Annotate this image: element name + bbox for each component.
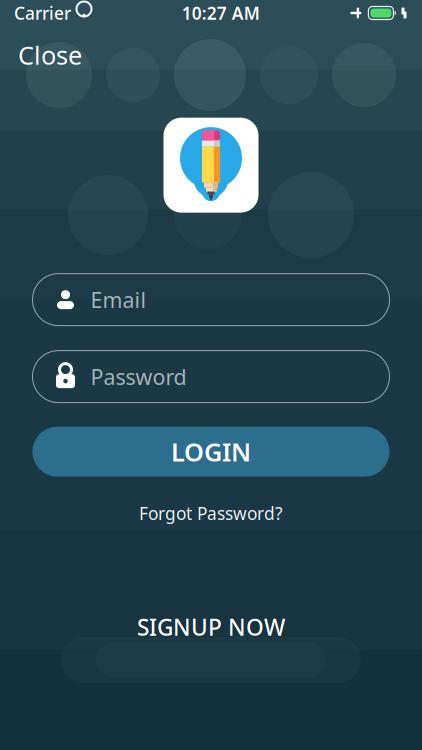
staticText: Carrier: [14, 1, 71, 24]
button[interactable]: Forgot Password?: [123, 497, 299, 530]
button[interactable]: Close: [0, 30, 100, 80]
button[interactable]: LOGIN: [32, 427, 389, 477]
staticText: Close: [18, 38, 82, 72]
staticText: Forgot Password?: [139, 502, 283, 525]
staticText: 10:27 AM: [182, 1, 260, 24]
button[interactable]: SIGNUP NOW: [113, 602, 309, 652]
staticText: SIGNUP NOW: [137, 612, 285, 642]
button[interactable]: Email: [32, 274, 389, 326]
staticText: LOGIN: [171, 435, 251, 468]
staticText: Email: [90, 285, 146, 314]
staticText: Password: [90, 362, 186, 391]
button[interactable]: Password: [32, 351, 389, 403]
